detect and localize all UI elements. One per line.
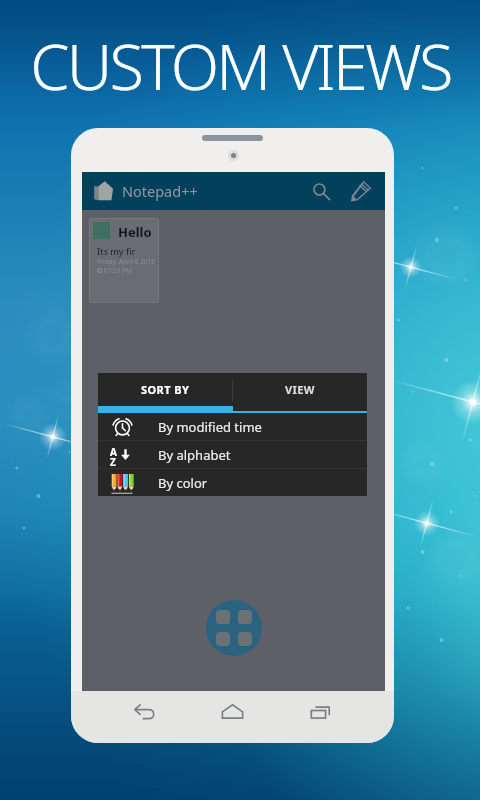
staticText: Z [110, 455, 116, 469]
button[interactable]: VIEW [233, 373, 367, 406]
button[interactable]: SORT BY [98, 373, 232, 406]
staticText: A [110, 445, 117, 459]
button[interactable]: Apps [206, 600, 262, 656]
staticText: Hello [118, 223, 152, 241]
button[interactable]: Back [101, 691, 188, 735]
staticText: VIEW [285, 382, 315, 397]
staticText: 07:29 PM [102, 266, 132, 275]
button[interactable]: Home [188, 691, 276, 735]
button[interactable]: Recents [276, 691, 364, 735]
staticText: SORT BY [141, 382, 190, 397]
staticText: CUSTOM VIEWS [30, 23, 451, 109]
staticText: By alphabet [158, 446, 231, 464]
staticText: By color [158, 474, 208, 492]
button[interactable]: Hello [89, 218, 159, 303]
button[interactable]: By modified time [98, 413, 367, 440]
button[interactable]: Search [301, 172, 341, 210]
staticText: By modified time [158, 418, 262, 436]
staticText: Its my fir [97, 245, 136, 257]
staticText: Friday, April 8 2016 [97, 257, 156, 266]
staticText: Notepad++ [122, 181, 198, 201]
button[interactable]: A [98, 441, 367, 468]
button[interactable]: New note [341, 172, 381, 210]
button[interactable]: By color [98, 469, 367, 496]
